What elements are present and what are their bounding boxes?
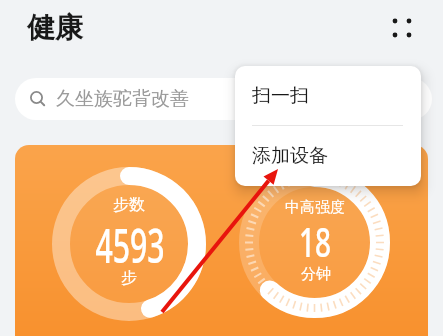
staticText: 4593: [95, 212, 165, 272]
button[interactable]: [384, 10, 420, 46]
staticText: 18: [299, 214, 331, 268]
staticText: 步: [121, 268, 137, 288]
staticText: 中高强度: [285, 198, 345, 217]
staticText: 健康: [27, 10, 83, 45]
staticText: 添加设备: [252, 144, 328, 168]
staticText: 步数: [113, 195, 145, 215]
button[interactable]: [15, 145, 428, 336]
staticText: 扫一扫: [252, 84, 309, 108]
button[interactable]: 久坐族驼背改善: [15, 78, 432, 120]
button[interactable]: 扫一扫: [235, 66, 421, 125]
staticText: 久坐族驼背改善: [56, 87, 189, 111]
staticText: 分钟: [301, 265, 331, 284]
button[interactable]: 添加设备: [235, 126, 421, 186]
